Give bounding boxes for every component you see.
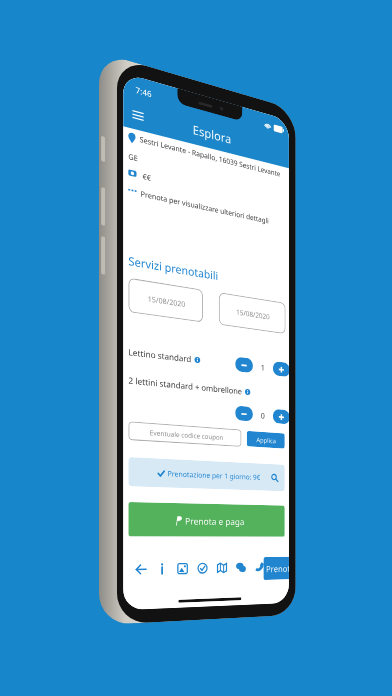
- staticText: Lettino standard: [122, 318, 197, 393]
- staticText: Prenota: [259, 549, 296, 587]
- staticText: GE: [122, 146, 144, 168]
- button[interactable]: Eventuale codice coupon: [116, 366, 254, 504]
- button[interactable]: Increase: [266, 354, 296, 384]
- button[interactable]: Check: [187, 553, 218, 584]
- staticText: 2 lettini standard + ombrellone: [121, 321, 249, 450]
- button[interactable]: Map: [207, 553, 237, 583]
- button[interactable]: Prenota e paga: [103, 417, 310, 625]
- button[interactable]: Increase: [265, 401, 296, 432]
- staticText: Applica: [252, 425, 281, 455]
- button[interactable]: 15/08/2020: [110, 245, 221, 356]
- staticText: 0: [255, 408, 270, 423]
- staticText: Sestri Levante - Rapallo, 16039 Sestri L…: [126, 71, 294, 241]
- staticText: Eventuale codice coupon: [143, 392, 230, 479]
- staticText: Servizi prenotabili: [118, 212, 229, 323]
- button[interactable]: Applica: [238, 412, 293, 468]
- button[interactable]: 15/08/2020: [202, 263, 302, 364]
- button[interactable]: Chat: [226, 552, 256, 582]
- button[interactable]: Decrease: [228, 349, 260, 381]
- staticText: 7:46: [128, 76, 159, 107]
- staticText: €€: [137, 167, 157, 187]
- button[interactable]: Photos: [167, 553, 198, 584]
- button[interactable]: Back: [125, 553, 157, 586]
- staticText: Esplora: [182, 104, 242, 164]
- button[interactable]: Call: [245, 552, 274, 582]
- staticText: Prenota per visualizzare ulteriori detta…: [130, 131, 280, 283]
- button[interactable]: Info: [146, 553, 178, 585]
- staticText: Prenotazione per 1 giorno: 9€: [159, 420, 269, 531]
- button[interactable]: Decrease: [227, 397, 260, 430]
- button[interactable]: Prenotazione per 1 giorno: 9€: [108, 377, 305, 574]
- staticText: 15/08/2020: [231, 291, 276, 337]
- staticText: 15/08/2020: [142, 276, 192, 326]
- staticText: 1: [255, 360, 270, 375]
- staticText: Prenota e paga: [176, 481, 254, 560]
- button[interactable]: Menu: [115, 93, 159, 137]
- button[interactable]: Prenota: [250, 542, 302, 594]
